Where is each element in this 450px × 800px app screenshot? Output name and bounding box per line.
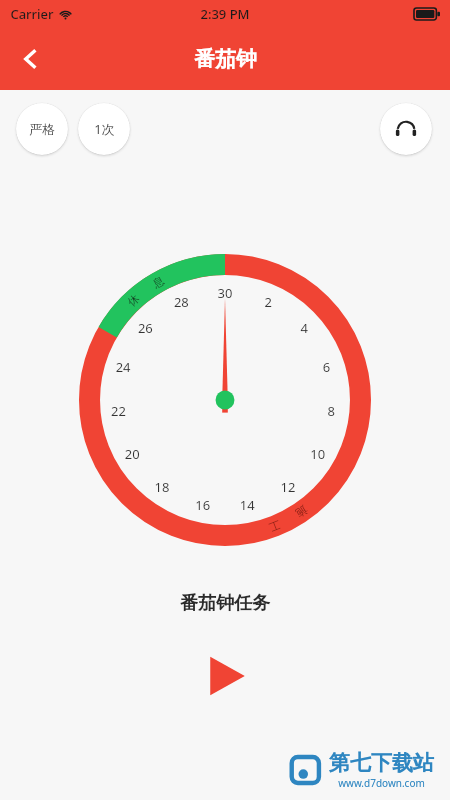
button[interactable]: 1次 [78, 103, 130, 155]
button[interactable]: 严格 [16, 103, 68, 155]
staticText: 番茄钟任务 [180, 592, 270, 615]
button[interactable]: Sound [380, 103, 432, 155]
staticText: www.d7down.com [338, 776, 425, 790]
staticText: 番茄钟 [194, 46, 257, 72]
staticText: 2:39 PM [200, 5, 250, 23]
staticText: 严格 [29, 121, 55, 137]
button[interactable]: Back [8, 36, 54, 82]
staticText: Carrier [10, 5, 54, 23]
button[interactable]: Start [196, 647, 254, 705]
staticText: 1次 [94, 120, 115, 138]
staticText: 第七下载站 [329, 750, 434, 776]
